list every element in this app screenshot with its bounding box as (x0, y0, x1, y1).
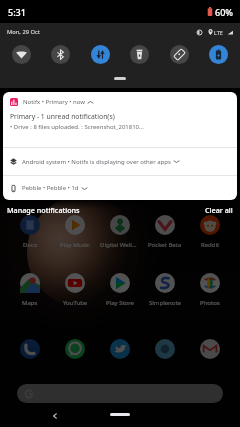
button[interactable]: Search (17, 384, 223, 403)
staticText: Pocket Beta (148, 241, 182, 249)
button[interactable]: App (145, 339, 185, 359)
staticText: 60% (215, 6, 233, 18)
button[interactable]: Docs (10, 215, 50, 249)
button[interactable]: YouTube (55, 273, 95, 307)
button[interactable]: Clear all (205, 205, 233, 215)
staticText: Maps (22, 299, 38, 307)
staticText: YouTube (63, 299, 88, 307)
button[interactable]: Wi-Fi (12, 45, 31, 64)
staticText: Mon, 29 Oct (7, 28, 40, 36)
button[interactable]: App (190, 339, 230, 359)
staticText: Play Music (60, 241, 90, 249)
button[interactable]: Mobile data (91, 45, 110, 64)
button[interactable]: Maps (10, 273, 50, 307)
button[interactable]: Home (110, 413, 130, 416)
button[interactable]: Bluetooth (51, 45, 70, 64)
staticText: Docs (23, 241, 37, 249)
button[interactable]: Battery saver (209, 45, 228, 64)
button[interactable]: App (10, 339, 50, 359)
button[interactable]: Auto rotate (170, 45, 189, 64)
button[interactable]: Pocket Beta (145, 215, 185, 249)
button[interactable]: Play Store (100, 273, 140, 307)
button[interactable]: App (55, 339, 95, 359)
button[interactable]: Simplenote (145, 273, 185, 307)
staticText: Clear all (205, 205, 233, 215)
button[interactable]: Notifx • Primary • now (3, 92, 237, 147)
button[interactable]: Pebble • Pebble • 1d (3, 176, 237, 200)
staticText: Photos (200, 299, 220, 307)
staticText: Digital Wellb... (100, 241, 140, 249)
staticText: Simplenote (149, 299, 181, 307)
staticText: Play Store (106, 299, 134, 307)
button[interactable]: Android system • Notifx is displaying ov… (3, 148, 237, 175)
staticText: • Drive : 8 files uploaded. : Screenshot… (10, 123, 144, 131)
staticText: Reddit (201, 241, 220, 249)
staticText: 5:31 (8, 6, 26, 18)
staticText: LTE (214, 29, 223, 36)
button[interactable]: Play Music (55, 215, 95, 249)
button[interactable]: Back (48, 409, 61, 422)
button[interactable]: Flashlight (130, 45, 149, 64)
button[interactable]: Digital Wellb... (100, 215, 140, 249)
staticText: Pebble • Pebble • 1d (22, 184, 79, 192)
staticText: Manage notifications (7, 205, 80, 215)
button[interactable]: Photos (190, 273, 230, 307)
staticText: Android system • Notifx is displaying ov… (22, 158, 171, 166)
button[interactable]: Reddit (190, 215, 230, 249)
staticText: Notifx • Primary • now (23, 98, 85, 106)
button[interactable]: Manage notifications (7, 205, 80, 215)
staticText: Primary - 1 unread notification(s) (10, 112, 115, 121)
button[interactable]: App (100, 339, 140, 359)
